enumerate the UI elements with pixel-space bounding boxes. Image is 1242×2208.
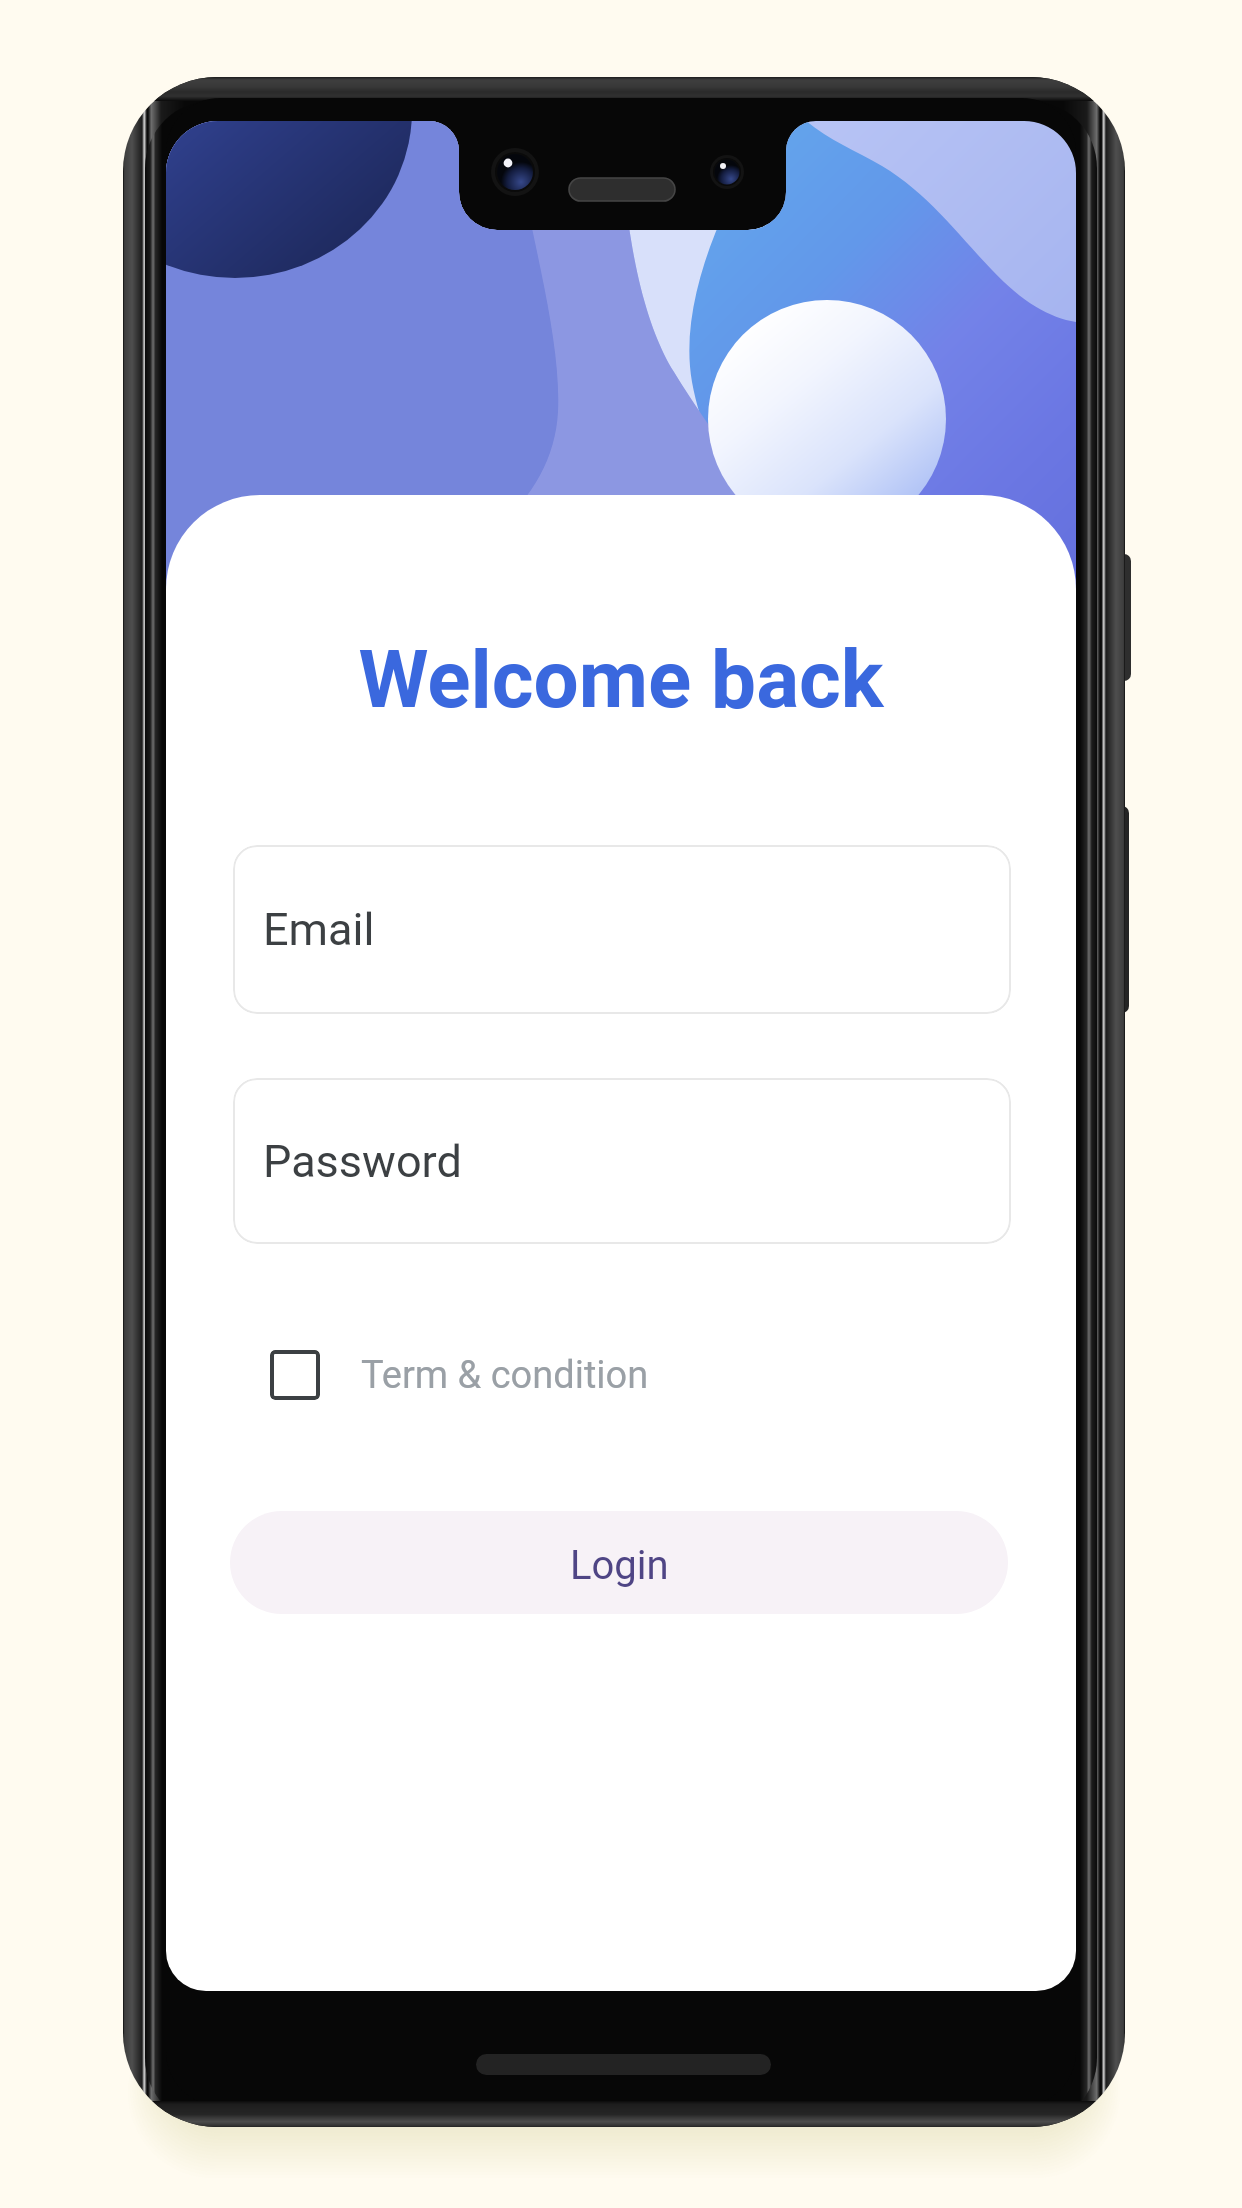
- staticText: Term & condition: [361, 1353, 649, 1398]
- staticText: Welcome back: [166, 633, 1076, 727]
- staticText: Login: [570, 1542, 669, 1589]
- button[interactable]: Accept terms and conditions: [270, 1345, 649, 1405]
- button[interactable]: Email: [233, 845, 1011, 1014]
- staticText: Password: [263, 1135, 462, 1188]
- button[interactable]: Accept terms and conditions: [270, 1350, 320, 1400]
- staticText: Email: [263, 903, 375, 956]
- button[interactable]: Login: [230, 1511, 1008, 1614]
- button[interactable]: Password: [233, 1078, 1011, 1244]
